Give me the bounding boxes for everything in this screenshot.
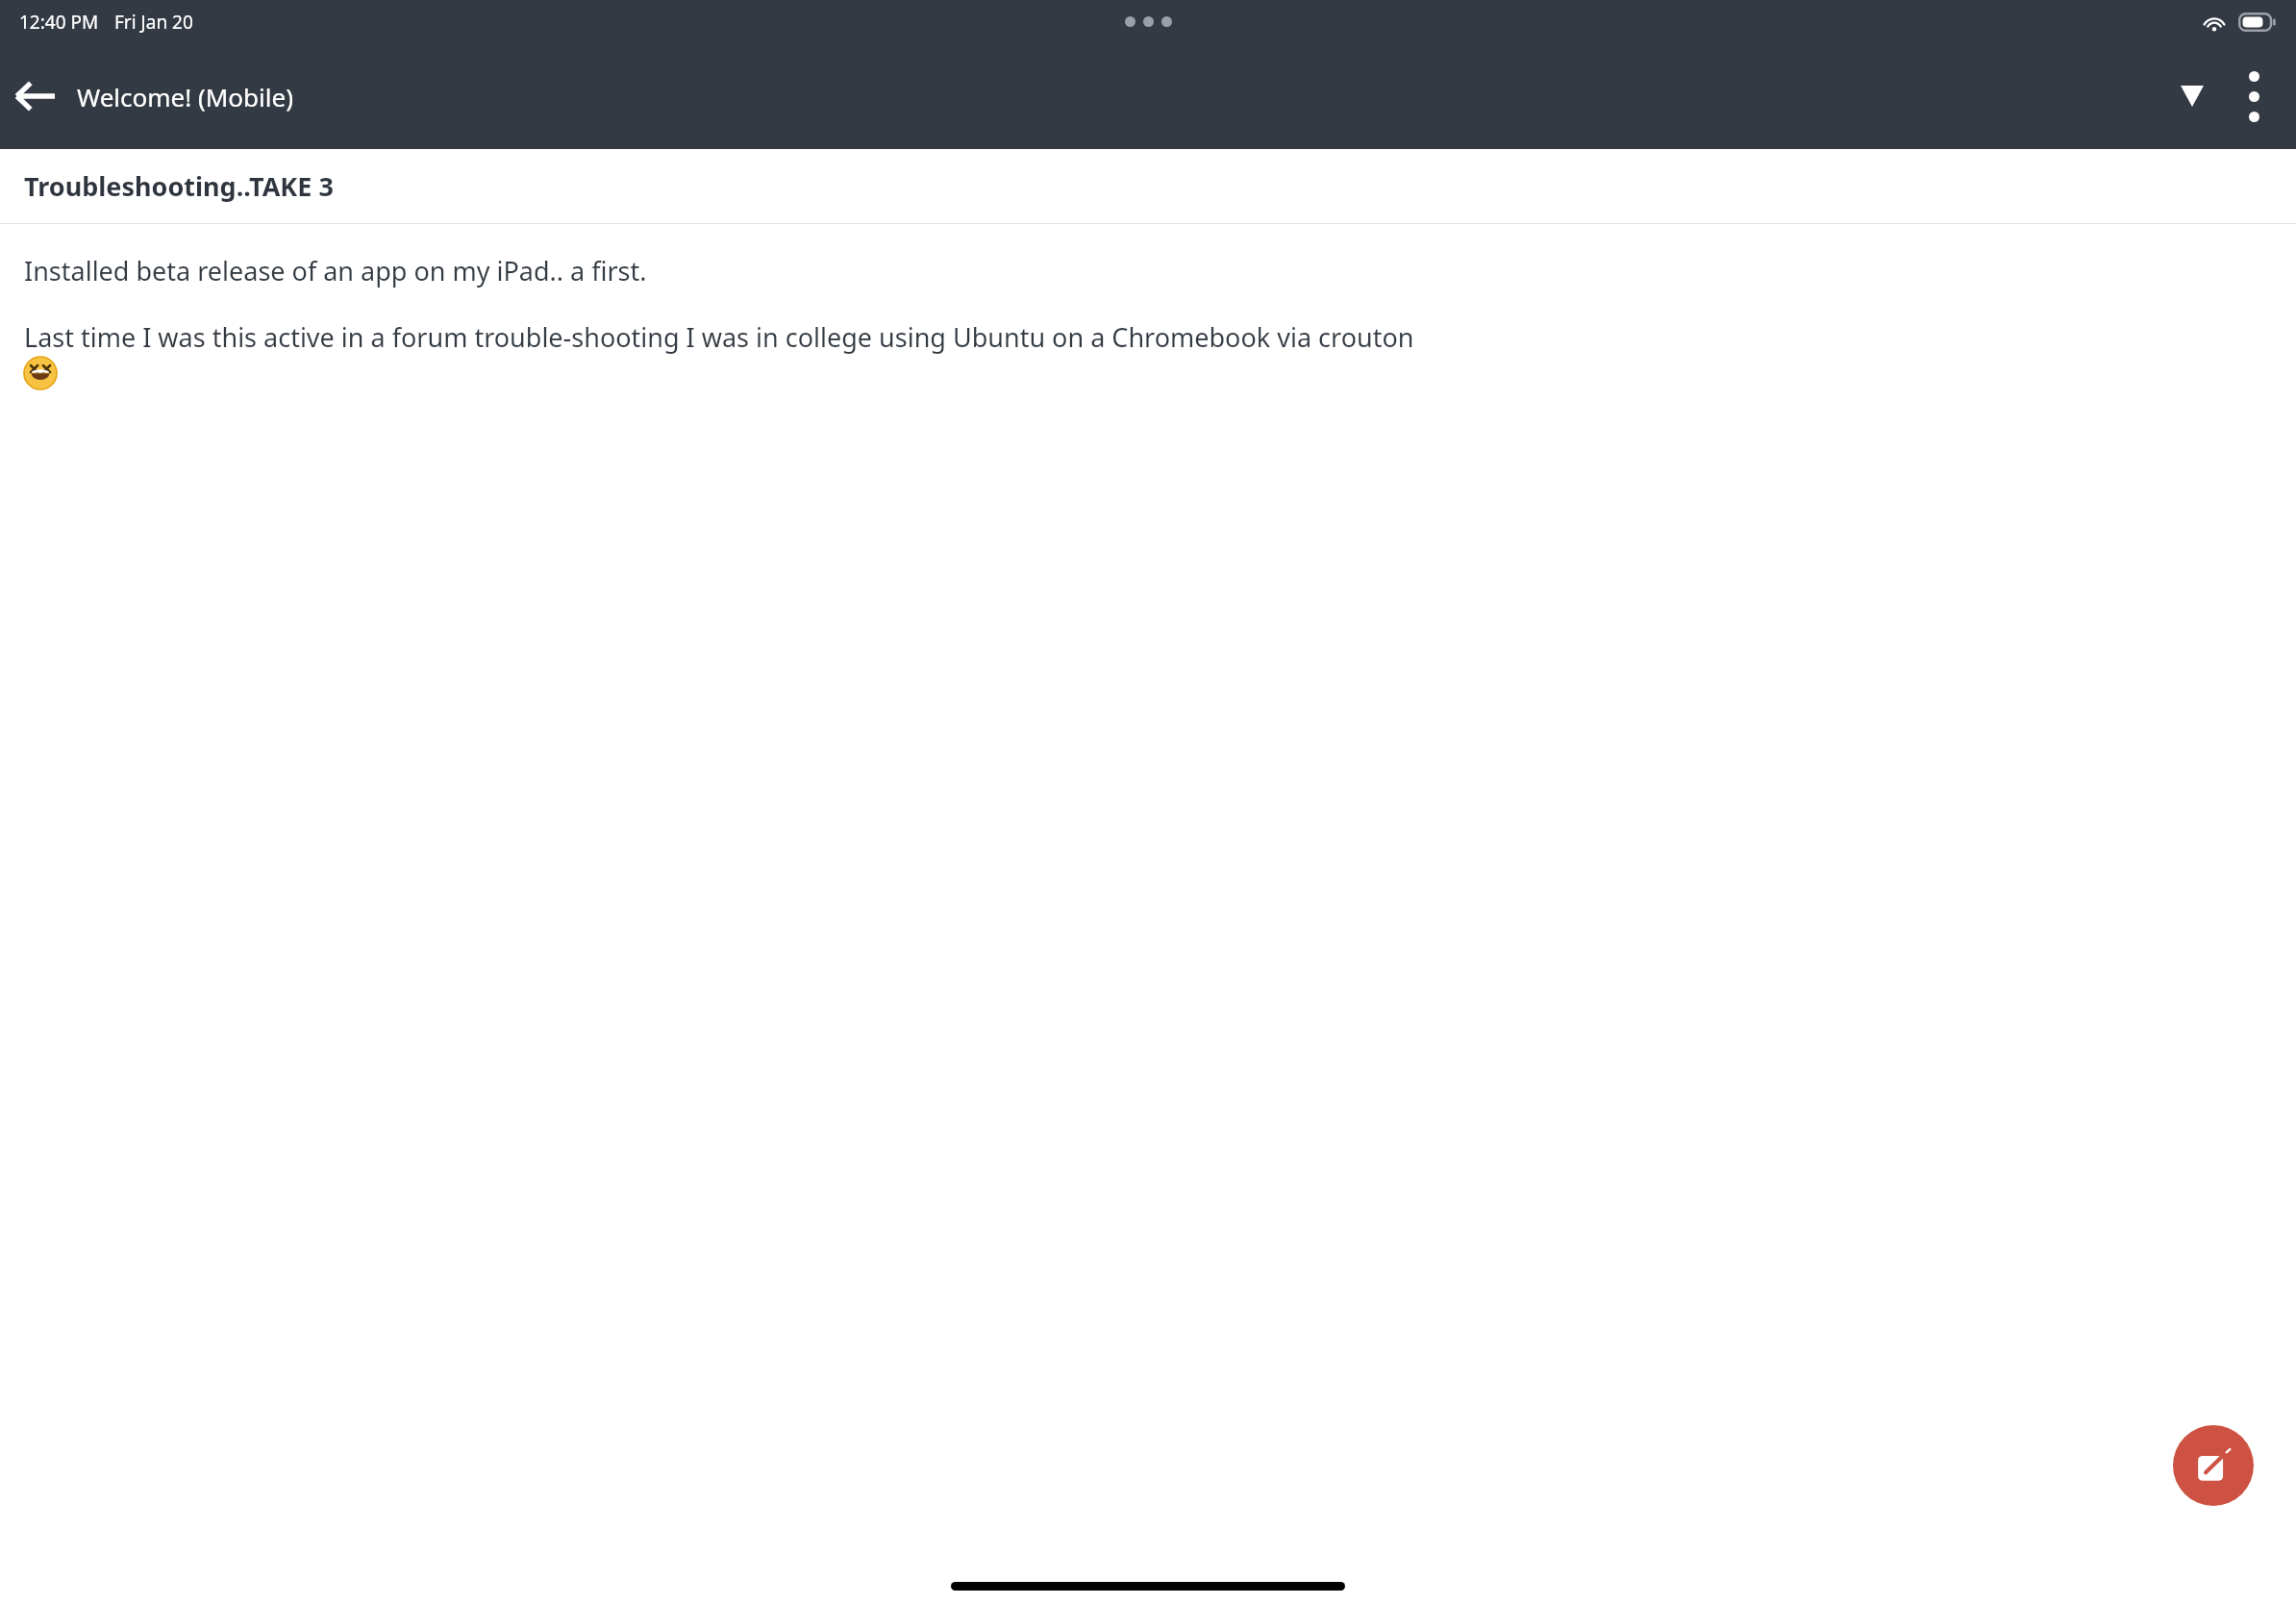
- staticText: Troubleshooting..TAKE 3: [24, 168, 334, 204]
- button[interactable]: Troubleshooting..TAKE 3: [0, 149, 2296, 223]
- staticText: Welcome! (Mobile): [77, 80, 293, 113]
- staticText: Fri Jan 20: [114, 10, 193, 35]
- button[interactable]: More options: [2223, 65, 2284, 127]
- button[interactable]: Compose new message: [2173, 1425, 2254, 1506]
- staticText: 12:40 PM: [19, 10, 99, 35]
- staticText: Installed beta release of an app on my i…: [24, 253, 647, 288]
- button[interactable]: Jump to last: [2161, 65, 2223, 127]
- button[interactable]: Back: [0, 62, 69, 131]
- staticText: Last time I was this active in a forum t…: [24, 319, 1414, 355]
